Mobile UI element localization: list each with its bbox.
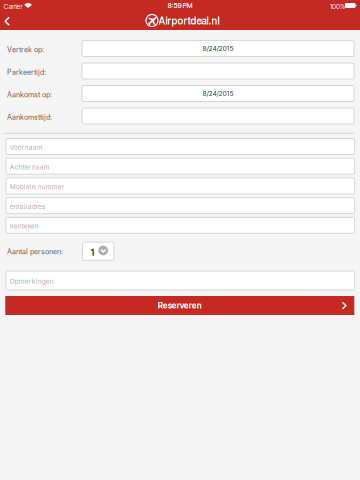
- staticText: 1: [91, 248, 94, 258]
- staticText: 100%: [330, 3, 345, 11]
- staticText: Kenteken: [10, 222, 39, 230]
- staticText: Voornaam: [10, 143, 43, 151]
- staticText: Mobiele nummer: [10, 183, 64, 191]
- staticText: 8/24/2015: [202, 44, 233, 53]
- staticText: Aankomst op:: [7, 90, 52, 99]
- staticText: Airportdeal.nl: [159, 15, 220, 27]
- staticText: Vertrek op:: [7, 45, 44, 54]
- button[interactable]: 1: [82, 242, 114, 260]
- staticText: Aankomsttijd:: [7, 113, 52, 121]
- button[interactable]: Reserveren: [5, 296, 354, 315]
- staticText: Reserveren: [158, 300, 202, 310]
- button[interactable]: Back: [0, 11, 24, 30]
- staticText: Carrier: [4, 3, 23, 11]
- staticText: Aantal personen:: [7, 247, 63, 256]
- staticText: Opmerkingen: [10, 277, 54, 285]
- staticText: 8/24/2015: [202, 89, 233, 98]
- staticText: Achternaam: [10, 163, 50, 171]
- staticText: 8:59 PM: [167, 1, 192, 10]
- staticText: Parkeertijd:: [7, 68, 46, 76]
- staticText: emailadres: [10, 202, 45, 210]
